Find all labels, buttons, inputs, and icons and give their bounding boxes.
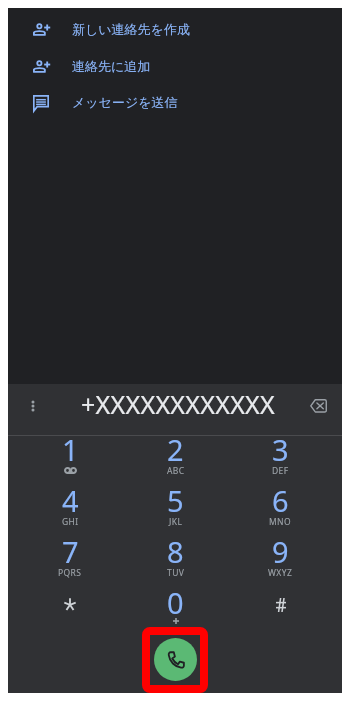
- button[interactable]: 4: [17, 487, 123, 538]
- button[interactable]: 6: [228, 487, 333, 538]
- staticText: 5: [167, 481, 184, 520]
- staticText: 新しい連絡先を作成: [72, 21, 190, 37]
- staticText: MNO: [269, 516, 292, 528]
- staticText: 0: [167, 583, 184, 622]
- staticText: 2: [167, 430, 184, 469]
- button[interactable]: 7: [17, 538, 123, 589]
- button[interactable]: [17, 589, 123, 640]
- staticText: GHI: [62, 516, 79, 528]
- button[interactable]: 連絡先に追加: [8, 48, 342, 84]
- staticText: WXYZ: [268, 567, 293, 579]
- staticText: メッセージを送信: [72, 94, 178, 110]
- button[interactable]: 2: [123, 436, 228, 487]
- staticText: 7: [62, 532, 79, 571]
- staticText: 4: [62, 481, 79, 520]
- staticText: DEF: [272, 465, 289, 477]
- staticText: TUV: [167, 567, 185, 579]
- staticText: PQRS: [58, 567, 82, 579]
- staticText: 9: [272, 532, 289, 571]
- staticText: JKL: [169, 516, 183, 528]
- button[interactable]: 0: [123, 589, 228, 640]
- staticText: 3: [272, 430, 289, 469]
- staticText: +XXXXXXXXXXXX: [81, 387, 276, 421]
- button[interactable]: 9: [228, 538, 333, 589]
- button[interactable]: 1: [17, 436, 123, 487]
- staticText: 8: [167, 532, 184, 571]
- button[interactable]: 新しい連絡先を作成: [8, 11, 342, 47]
- button[interactable]: Backspace: [301, 389, 335, 423]
- staticText: 1: [62, 430, 79, 469]
- button[interactable]: 3: [228, 436, 333, 487]
- button[interactable]: 5: [123, 487, 228, 538]
- button[interactable]: [228, 589, 333, 640]
- button[interactable]: More options: [17, 390, 49, 422]
- button[interactable]: メッセージを送信: [8, 84, 342, 120]
- button[interactable]: Call: [154, 638, 197, 681]
- staticText: 6: [272, 481, 289, 520]
- staticText: ABC: [167, 465, 185, 477]
- button[interactable]: 8: [123, 538, 228, 589]
- staticText: 連絡先に追加: [72, 58, 151, 74]
